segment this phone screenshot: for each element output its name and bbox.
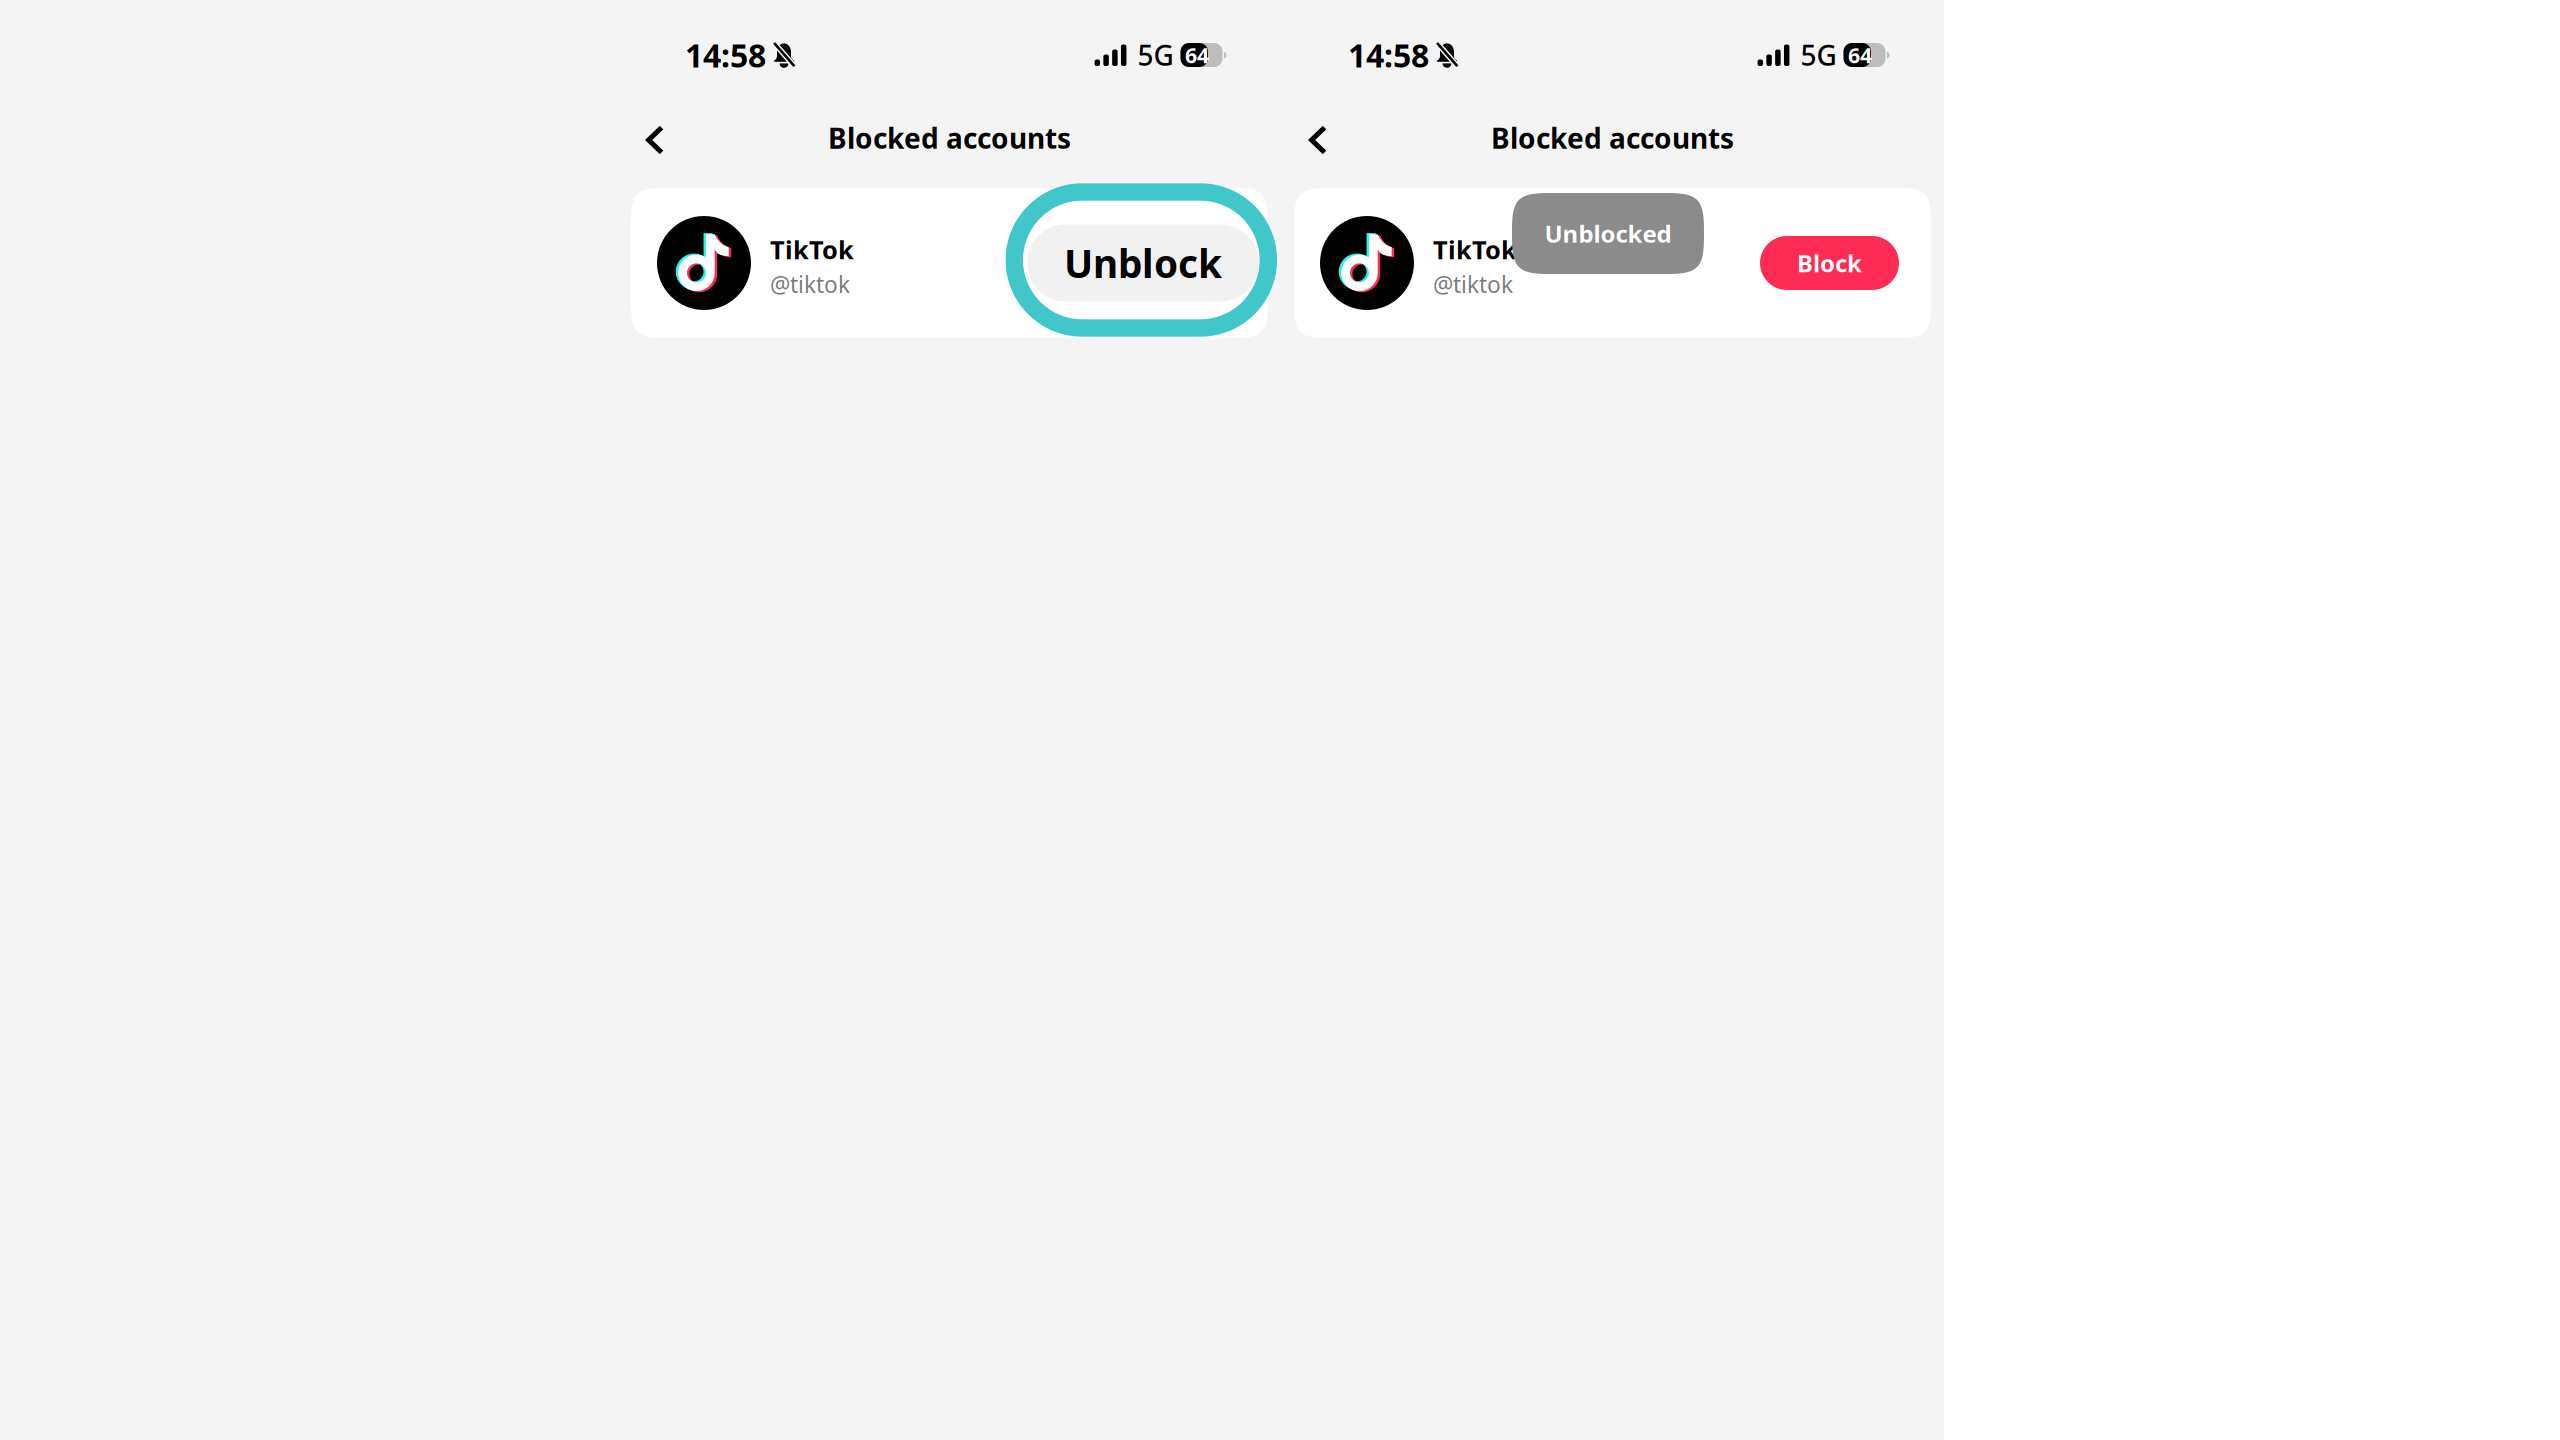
staticText: 14:58 [685,34,766,76]
staticText: Unblocked [1544,218,1671,249]
staticText: 64 [1185,41,1209,69]
staticText: Unblock [1064,237,1222,289]
staticText: Block [1797,247,1862,279]
staticText: @tiktok [770,269,850,299]
staticText: TikTok [770,233,854,266]
staticText: Blocked accounts [1491,119,1734,157]
button[interactable]: Back [1286,108,1350,172]
staticText: 5G [1137,36,1173,74]
staticText: TikTok [1433,233,1517,266]
button[interactable]: TikTok [631,188,1268,338]
button[interactable]: Back [623,108,687,172]
staticText: @tiktok [1433,269,1513,299]
staticText: 64 [1848,41,1872,69]
button[interactable]: TikTok [1294,188,1931,338]
staticText: 14:58 [1348,34,1429,76]
staticText: 5G [1800,36,1836,74]
button[interactable]: Unblock [1027,224,1259,301]
staticText: Blocked accounts [828,119,1071,157]
button[interactable]: Block [1760,236,1899,290]
